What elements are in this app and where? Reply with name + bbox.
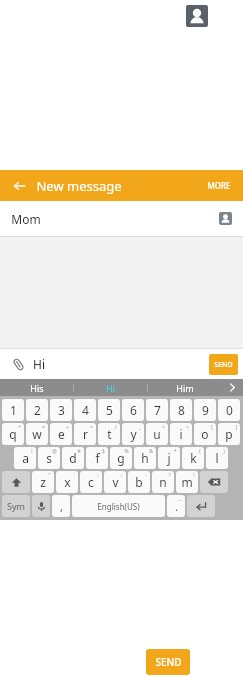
staticText: MORE [207,180,231,191]
button[interactable]: 6 [122,399,144,421]
staticText: s [46,450,52,466]
staticText: 8 [178,402,185,418]
button[interactable]: Enter [187,495,215,517]
staticText: p [225,426,233,442]
staticText: . [175,499,178,514]
button[interactable]: : [80,471,102,493]
button[interactable]: Hi [74,379,147,396]
button[interactable]: 5 [98,399,120,421]
button[interactable]: Backspace [200,471,228,493]
button[interactable]: 7 [146,399,168,421]
button[interactable]: English(US) [72,495,165,517]
button[interactable]: ( [182,447,204,469]
staticText: _ [138,424,141,431]
staticText: Hi [106,382,115,394]
staticText: ! [31,448,33,455]
staticText: ( [199,448,201,455]
staticText: Mom [11,211,41,227]
button[interactable]: ... [167,495,185,517]
button[interactable]: ? [152,471,174,493]
button[interactable]: Back [10,177,28,195]
staticText: 4 [82,402,89,418]
button[interactable]: ] [218,423,240,445]
staticText: y [130,426,137,442]
staticText: & [149,448,153,455]
button[interactable]: ) [206,447,228,469]
button[interactable] [219,212,232,225]
staticText: ! [193,472,195,479]
staticText: j [167,450,171,466]
staticText: Sym [7,500,25,512]
staticText: i [179,426,183,442]
button[interactable]: 1 [2,399,24,421]
staticText: 0 [226,402,233,418]
button[interactable]: 8 [170,399,192,421]
staticText: - [145,472,147,479]
button[interactable]: & [134,447,156,469]
button[interactable]: ! [14,447,36,469]
button[interactable]: ' [56,471,78,493]
staticText: z [40,474,46,490]
staticText: > [186,424,189,431]
button[interactable]: Voice input [32,495,50,517]
staticText: / [115,424,117,431]
staticText: Him [176,382,194,394]
staticText: n [159,474,167,490]
staticText: l [215,450,219,466]
button[interactable]: SEND [146,649,190,675]
staticText: g [117,450,125,466]
button[interactable]: * [158,447,180,469]
staticText: b [135,474,143,490]
button[interactable]: Shift [2,471,30,493]
staticText: a [22,450,29,466]
staticText: 3 [58,402,65,418]
button[interactable]: His [0,379,73,396]
staticText: u [153,426,161,442]
button[interactable]: " [32,471,54,493]
button[interactable]: [ [194,423,216,445]
staticText: e [58,426,65,442]
staticText: 1 [10,402,17,418]
button[interactable]: + [2,423,24,445]
button[interactable]: ! [176,471,198,493]
button[interactable]: < [146,423,168,445]
staticText: x [64,474,71,490]
button[interactable]: _ [122,423,144,445]
button[interactable]: Sym [2,495,30,517]
button[interactable]: 9 [194,399,216,421]
button[interactable]: Him [148,379,221,396]
staticText: m [181,474,193,490]
staticText: @ [52,448,57,455]
button[interactable]: 3 [50,399,72,421]
button[interactable]: ÷ [50,423,72,445]
button[interactable]: MORE [205,178,233,193]
button[interactable]: SEND [209,354,238,375]
staticText: $ [102,448,105,455]
button[interactable]: $ [86,447,108,469]
staticText: 9 [202,402,209,418]
button[interactable]: # [62,447,84,469]
button[interactable]: % [110,447,132,469]
button[interactable]: 2 [26,399,48,421]
staticText: < [162,424,165,431]
button[interactable]: = [74,423,96,445]
button[interactable]: More suggestions [221,379,243,396]
button[interactable]: ; [104,471,126,493]
button[interactable]: , [52,495,70,517]
button[interactable]: 0 [218,399,240,421]
button[interactable]: @ [38,447,60,469]
button[interactable]: > [170,423,192,445]
staticText: c [88,474,94,490]
staticText: His [30,382,44,394]
button[interactable]: × [26,423,48,445]
staticText: t [107,426,112,442]
staticText: h [141,450,149,466]
button[interactable]: - [128,471,150,493]
staticText: SEND [214,360,233,370]
staticText: [ [211,424,213,431]
staticText: 2 [34,402,41,418]
staticText: New message [36,177,122,195]
button[interactable]: Attach [10,356,26,372]
button[interactable]: / [98,423,120,445]
button[interactable]: 4 [74,399,96,421]
